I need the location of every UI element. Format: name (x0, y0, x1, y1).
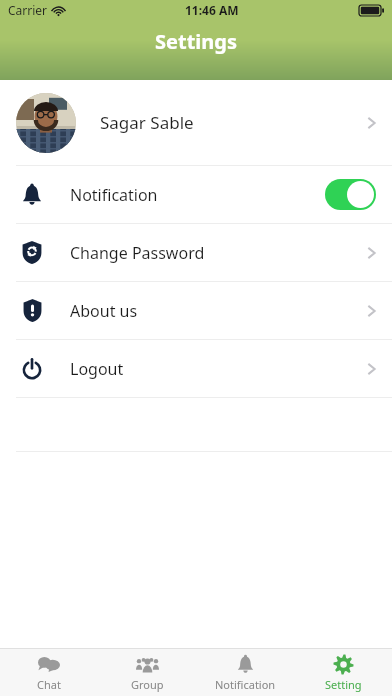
button[interactable]: About us (0, 282, 392, 339)
staticText: About us (70, 300, 138, 322)
button[interactable]: Notification toggle (325, 179, 376, 210)
button[interactable]: Change Password (0, 224, 392, 281)
button[interactable]: Notification (196, 649, 294, 696)
staticText: Group (131, 677, 164, 692)
staticText: Settings (0, 28, 392, 55)
staticText: 11:46 AM (185, 2, 239, 18)
staticText: Notification (70, 184, 158, 206)
staticText: Notification (215, 677, 276, 692)
staticText: Chat (37, 677, 61, 692)
button[interactable]: Chat (0, 649, 98, 696)
staticText: Sagar Sable (100, 111, 194, 134)
button[interactable]: Group (98, 649, 196, 696)
staticText: Logout (70, 358, 124, 380)
button[interactable]: Notification (0, 166, 392, 223)
button[interactable]: Logout (0, 340, 392, 397)
staticText: Change Password (70, 242, 205, 264)
staticText: Carrier (8, 2, 48, 18)
button[interactable]: Sagar Sable (0, 80, 392, 165)
staticText: Setting (325, 677, 362, 692)
button[interactable]: Setting (294, 649, 392, 696)
